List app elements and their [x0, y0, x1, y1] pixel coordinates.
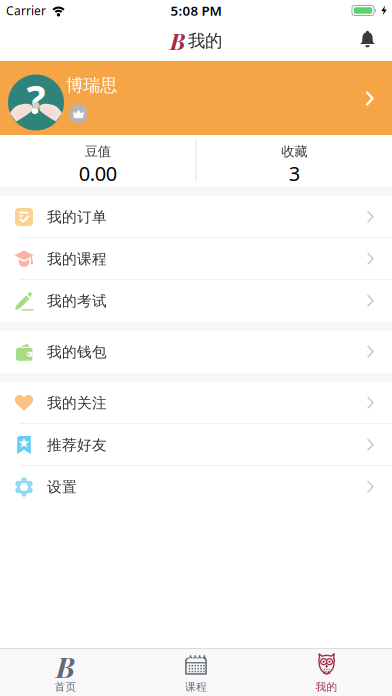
staticText: 博瑞思: [66, 75, 117, 96]
button[interactable]: 推荐好友: [0, 424, 392, 466]
button[interactable]: 我的钱包: [0, 331, 392, 373]
button[interactable]: Notifications: [359, 21, 392, 61]
staticText: B: [56, 648, 75, 685]
staticText: ?: [26, 72, 45, 125]
staticText: 我的关注: [47, 394, 107, 412]
button[interactable]: 我的关注: [0, 382, 392, 424]
button[interactable]: 设置: [0, 466, 392, 508]
button[interactable]: 课程: [131, 649, 261, 696]
button[interactable]: 我的课程: [0, 238, 392, 280]
staticText: 我的订单: [47, 208, 107, 226]
staticText: B: [170, 25, 185, 56]
staticText: 课程: [185, 680, 207, 693]
staticText: 设置: [47, 478, 77, 496]
staticText: 首页: [54, 680, 76, 693]
staticText: 我的: [188, 30, 222, 52]
staticText: 0.00: [79, 160, 117, 187]
staticText: Carrier: [6, 2, 46, 18]
staticText: 豆值: [85, 143, 111, 160]
button[interactable]: 我的订单: [0, 196, 392, 238]
button[interactable]: 收藏: [196, 135, 392, 187]
staticText: 收藏: [281, 143, 307, 160]
staticText: 我的课程: [47, 250, 107, 268]
button[interactable]: ?: [0, 61, 392, 135]
button[interactable]: B: [0, 649, 131, 696]
button[interactable]: 豆值: [0, 135, 195, 187]
staticText: 5:08 PM: [170, 2, 221, 19]
button[interactable]: 我的考试: [0, 280, 392, 322]
staticText: 3: [289, 160, 300, 187]
staticText: 我的钱包: [47, 343, 107, 361]
button[interactable]: 我的: [261, 649, 392, 696]
staticText: 我的考试: [47, 292, 107, 310]
staticText: 我的: [316, 680, 338, 693]
staticText: 推荐好友: [47, 436, 107, 454]
